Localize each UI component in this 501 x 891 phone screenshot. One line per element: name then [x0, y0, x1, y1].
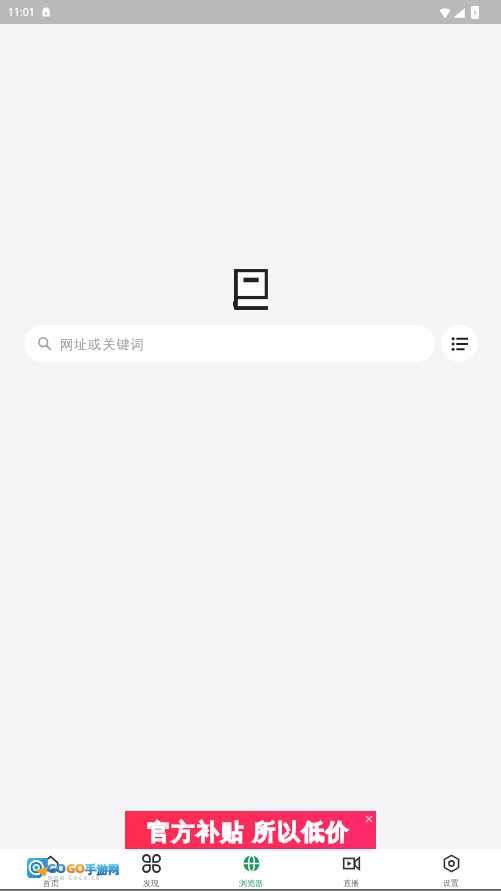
staticText: 直播: [343, 878, 359, 888]
button[interactable]: 浏览器: [201, 849, 301, 889]
staticText: GO: [66, 859, 85, 877]
button[interactable]: Close ad: [361, 811, 376, 826]
button[interactable]: 首页: [0, 849, 101, 889]
staticText: 官方补贴 所以低价: [147, 816, 350, 847]
button[interactable]: Bookmarks: [441, 325, 478, 362]
button[interactable]: 官方补贴 所以低价: [125, 811, 376, 849]
button[interactable]: 直播: [301, 849, 401, 889]
button[interactable]: 发现: [101, 849, 201, 889]
staticText: 网址或关键词: [60, 336, 145, 352]
staticText: 手游网: [85, 863, 120, 877]
staticText: 设置: [443, 878, 459, 888]
button[interactable]: 设置: [401, 849, 501, 889]
staticText: W W W . G O G O . C N: [48, 875, 100, 881]
staticText: 11:01: [8, 5, 35, 19]
staticText: 发现: [143, 878, 159, 888]
staticText: GO: [47, 859, 66, 877]
staticText: 首页: [43, 878, 59, 888]
button[interactable]: 网址或关键词: [24, 325, 435, 362]
staticText: 浏览器: [239, 878, 263, 888]
